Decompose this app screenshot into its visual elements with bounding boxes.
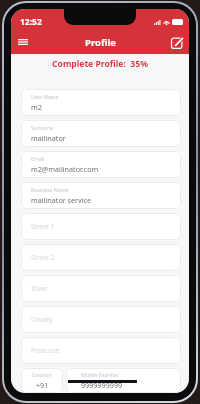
staticText: Surname bbox=[31, 124, 54, 131]
button[interactable]: Email bbox=[21, 151, 181, 178]
button[interactable]: Town bbox=[21, 275, 181, 302]
staticText: Country bbox=[32, 371, 52, 378]
button[interactable]: Postcode bbox=[21, 337, 181, 364]
button[interactable]: Country bbox=[21, 368, 63, 393]
button[interactable]: Street 1 bbox=[21, 213, 181, 240]
staticText: Email bbox=[31, 155, 45, 162]
staticText: Town bbox=[31, 284, 48, 293]
staticText: mailinator bbox=[31, 133, 66, 143]
button[interactable]: Edit profile bbox=[168, 33, 186, 51]
staticText: Complete Profile: 35% bbox=[52, 58, 148, 70]
button[interactable]: Street 2 bbox=[21, 244, 181, 271]
button[interactable]: User Name bbox=[21, 89, 181, 116]
staticText: Business Name bbox=[31, 186, 69, 193]
staticText: mailinator service bbox=[31, 195, 92, 205]
staticText: Profile bbox=[85, 36, 116, 49]
staticText: Street 1 bbox=[31, 222, 55, 231]
staticText: Mobile Number bbox=[81, 371, 120, 378]
staticText: County bbox=[31, 315, 53, 324]
staticText: 12:52 bbox=[20, 16, 42, 28]
staticText: User Name bbox=[31, 93, 59, 100]
staticText: +91 bbox=[36, 380, 49, 390]
staticText: 9999999999 bbox=[81, 380, 123, 390]
button[interactable]: Business Name bbox=[21, 182, 181, 209]
button[interactable]: Menu bbox=[13, 32, 33, 52]
button[interactable]: Mobile Number bbox=[66, 368, 181, 393]
staticText: m2 bbox=[31, 102, 42, 112]
button[interactable]: Surname bbox=[21, 120, 181, 147]
staticText: Postcode bbox=[31, 346, 60, 355]
staticText: Street 2 bbox=[31, 253, 55, 262]
button[interactable]: County bbox=[21, 306, 181, 333]
staticText: m2@mailinator.com bbox=[31, 164, 99, 174]
